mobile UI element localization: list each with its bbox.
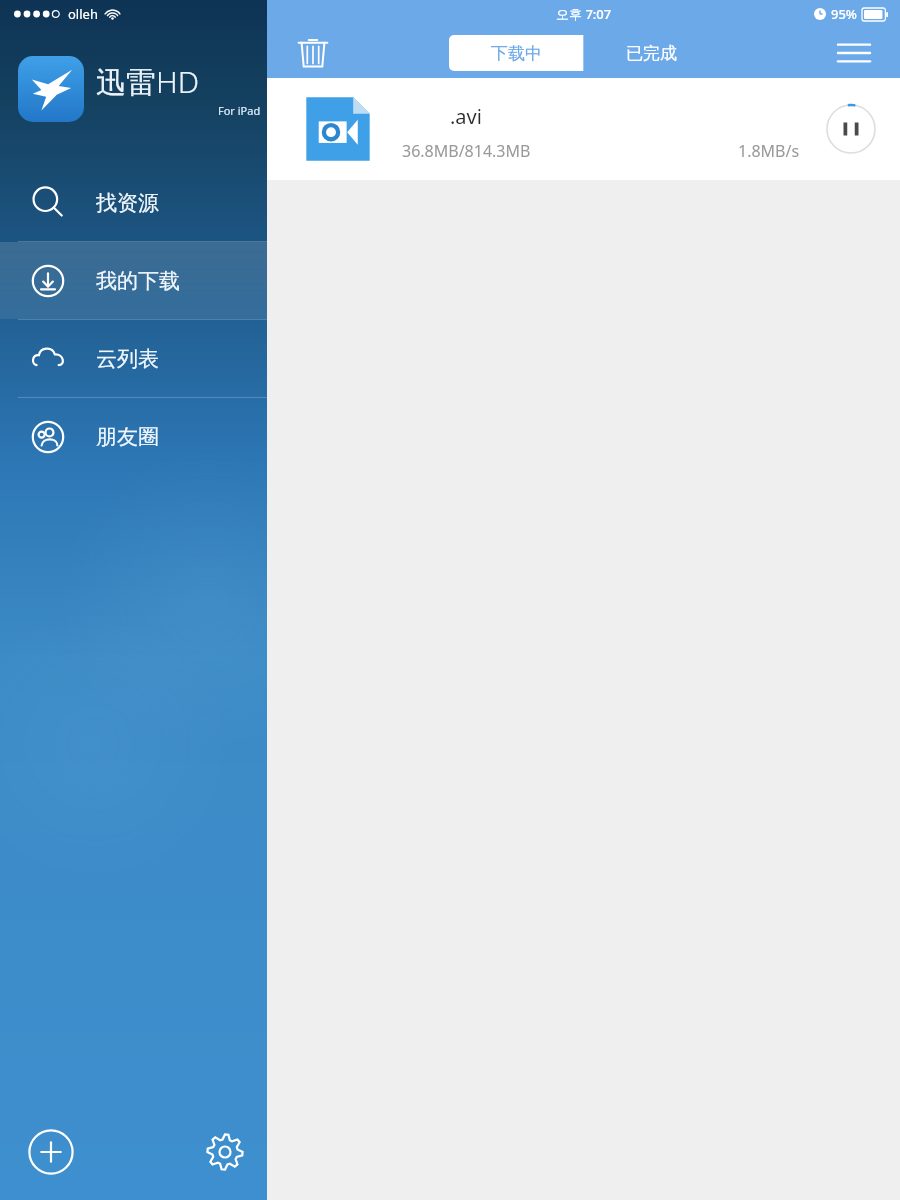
button[interactable]: 已完成 (584, 35, 719, 71)
staticText: 朋友圈 (96, 424, 159, 450)
button[interactable]: 云列表 (0, 320, 267, 397)
staticText: For iPad (218, 103, 261, 118)
staticText: 36.8MB/814.3MB (402, 140, 531, 162)
staticText: 我的下载 (96, 268, 180, 294)
staticText: 迅雷HD (96, 61, 200, 102)
button[interactable]: Delete (289, 29, 337, 77)
staticText: 找资源 (96, 190, 159, 216)
staticText: 오후 7:07 (556, 5, 612, 23)
button[interactable]: 下载中 (449, 35, 583, 71)
button[interactable]: Settings (196, 1123, 254, 1181)
button[interactable]: Pause download (822, 100, 880, 158)
staticText: 已完成 (626, 43, 677, 64)
staticText: olleh (68, 5, 98, 23)
button[interactable]: 找资源 (0, 164, 267, 241)
staticText: 1.8MB/s (738, 140, 800, 162)
button[interactable]: 我的下载 (0, 242, 267, 319)
staticText: 95% (831, 5, 857, 23)
button[interactable]: Add task (22, 1123, 80, 1181)
button[interactable]: .avi (267, 78, 900, 180)
staticText: .avi (450, 103, 482, 130)
button[interactable]: 朋友圈 (0, 398, 267, 475)
button[interactable]: Menu (830, 29, 878, 77)
staticText: 下载中 (491, 43, 542, 64)
staticText: 云列表 (96, 346, 159, 372)
